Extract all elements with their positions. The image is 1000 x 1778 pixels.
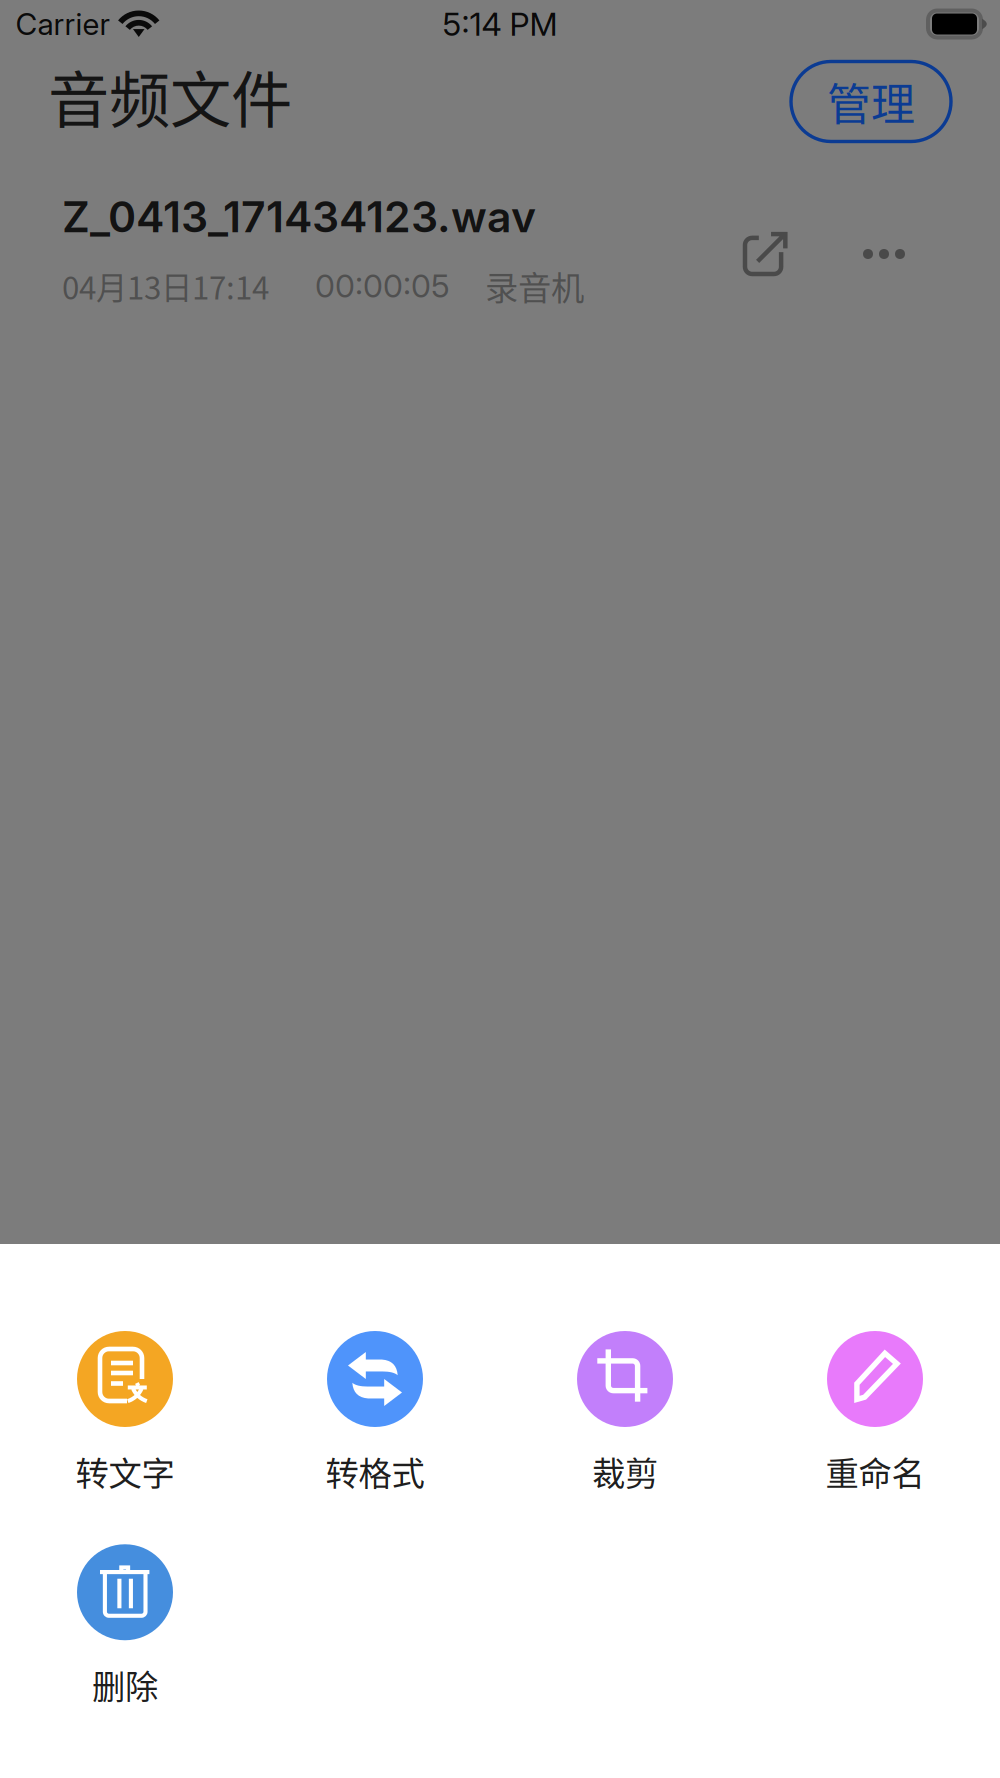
staticText: 管理 (827, 70, 915, 133)
staticText: Z_0413_171434123.wav (62, 191, 536, 243)
button[interactable]: 裁剪 (500, 1331, 750, 1495)
staticText: 重命名 (825, 1447, 924, 1495)
staticText: 00:00:05 (315, 266, 450, 305)
staticText: 5:14 PM (442, 5, 557, 43)
staticText: 转格式 (325, 1447, 424, 1495)
staticText: 转文字 (75, 1447, 174, 1495)
button[interactable]: 转格式 (250, 1331, 500, 1495)
staticText: 裁剪 (592, 1447, 658, 1495)
button[interactable]: 重命名 (750, 1331, 1000, 1495)
button[interactable]: Z_0413_171434123.wav (62, 191, 682, 321)
staticText: 音频文件 (48, 52, 292, 140)
button[interactable]: 转文字 (0, 1331, 250, 1495)
staticText: 录音机 (485, 262, 584, 310)
staticText: 04月13日17:14 (62, 263, 269, 308)
staticText: Carrier (15, 6, 110, 42)
button[interactable]: More options (840, 206, 928, 302)
button[interactable]: Share (722, 205, 810, 301)
staticText: 删除 (92, 1660, 158, 1709)
button[interactable]: 管理 (791, 61, 951, 141)
button[interactable]: 删除 (0, 1544, 250, 1709)
